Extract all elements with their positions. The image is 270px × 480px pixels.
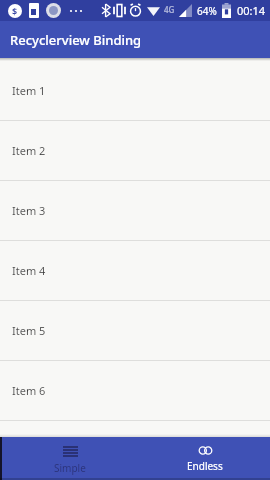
staticText: 4G: [164, 4, 175, 15]
staticText: Endless: [187, 459, 223, 473]
staticText: Item 3: [12, 203, 46, 218]
staticText: Item 2: [12, 143, 46, 158]
staticText: 00:14: [237, 3, 266, 18]
staticText: $: [12, 5, 18, 17]
button[interactable]: Item 2: [0, 121, 270, 180]
staticText: Item 1: [12, 83, 46, 98]
staticText: 64%: [197, 4, 217, 18]
staticText: Item 5: [12, 323, 46, 338]
button[interactable]: Endless: [140, 437, 270, 480]
button[interactable]: Simple: [0, 437, 140, 480]
staticText: Item 6: [12, 383, 46, 398]
button[interactable]: Item 4: [0, 241, 270, 300]
staticText: Recyclerview Binding: [10, 31, 142, 49]
button[interactable]: Item 6: [0, 361, 270, 420]
staticText: Item 4: [12, 263, 46, 278]
button[interactable]: Item 5: [0, 301, 270, 360]
staticText: Simple: [54, 461, 86, 475]
button[interactable]: Item 1: [0, 61, 270, 120]
button[interactable]: Item 3: [0, 181, 270, 240]
